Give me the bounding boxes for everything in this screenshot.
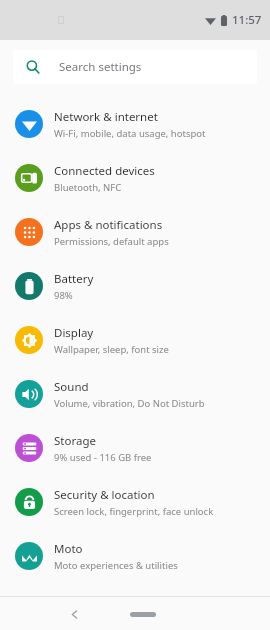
staticText: Moto [54, 541, 83, 557]
staticText: Connected devices [54, 163, 155, 179]
button[interactable]: Security & location [0, 475, 270, 529]
button[interactable]: Home [126, 606, 160, 622]
staticText: Bluetooth, NFC [54, 181, 122, 194]
staticText: Storage [54, 433, 96, 449]
staticText: 11:57 [232, 12, 262, 28]
staticText: Network & internet [54, 109, 158, 125]
button[interactable]: Storage [0, 421, 270, 475]
staticText: Wallpaper, sleep, font size [54, 343, 169, 356]
staticText: Moto experiences & utilities [54, 559, 178, 572]
button[interactable]: Sound [0, 367, 270, 421]
button[interactable]: Back [62, 602, 86, 626]
button[interactable]: Search settings [13, 50, 257, 84]
button[interactable]: Apps & notifications [0, 205, 270, 259]
staticText: Wi-Fi, mobile, data usage, hotspot [54, 127, 206, 140]
staticText: 98% [54, 289, 73, 302]
button[interactable]: Battery [0, 259, 270, 313]
staticText: Volume, vibration, Do Not Disturb [54, 397, 205, 410]
button[interactable]: Display [0, 313, 270, 367]
staticText: Permissions, default apps [54, 235, 169, 248]
staticText: Screen lock, fingerprint, face unlock [54, 505, 214, 518]
button[interactable]: Connected devices [0, 151, 270, 205]
staticText: Display [54, 325, 94, 341]
staticText: 9% used - 116 GB free [54, 451, 152, 464]
button[interactable]: Moto [0, 529, 270, 583]
staticText: Security & location [54, 487, 155, 503]
staticText: Battery [54, 271, 94, 287]
staticText: Apps & notifications [54, 217, 163, 233]
staticText: Sound [54, 379, 89, 395]
staticText: Search settings [59, 59, 142, 75]
button[interactable]: Network & internet [0, 97, 270, 151]
